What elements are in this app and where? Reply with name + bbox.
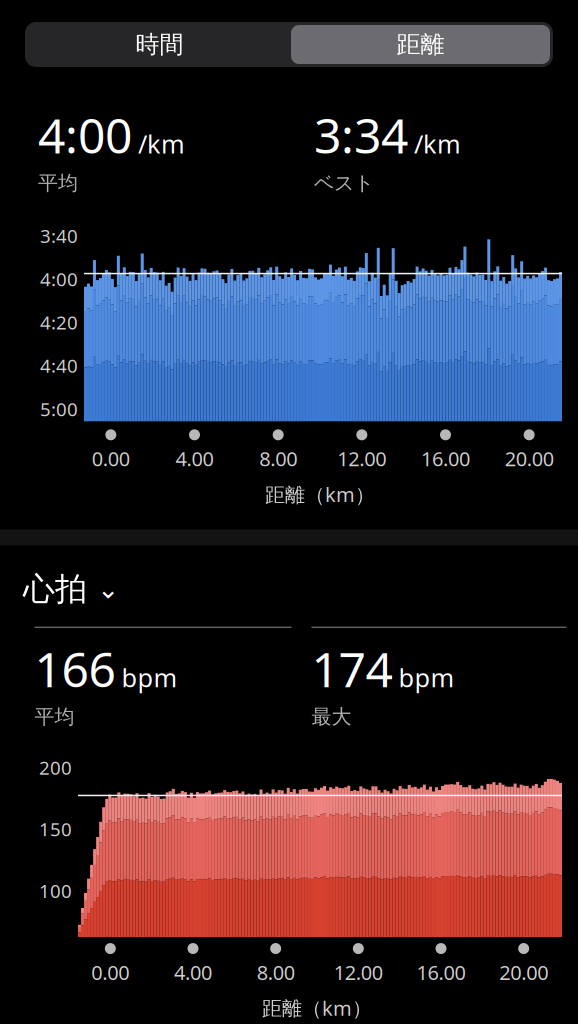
staticText: bpm (121, 661, 177, 694)
staticText: 5:00 (40, 396, 78, 421)
staticText: 4.00 (175, 445, 213, 472)
staticText: 4.00 (174, 959, 212, 986)
staticText: 20.00 (505, 445, 554, 472)
staticText: 平均 (34, 704, 74, 729)
staticText: 166 (34, 637, 115, 700)
staticText: 12.00 (334, 959, 383, 986)
button[interactable]: 距離 (291, 25, 550, 64)
staticText: 距離 (396, 30, 444, 59)
staticText: 心拍 (23, 569, 87, 609)
staticText: 距離（km） (262, 995, 372, 1021)
staticText: 100 (39, 878, 72, 903)
staticText: /km (138, 127, 185, 160)
staticText: 4:20 (40, 310, 78, 335)
staticText: 8.00 (259, 445, 297, 472)
staticText: 3:34 (314, 103, 408, 167)
staticText: /km (414, 127, 461, 160)
button[interactable]: 時間 (28, 25, 291, 64)
staticText: 平均 (38, 171, 78, 195)
staticText: 8.00 (257, 959, 295, 986)
staticText: ⌄ (97, 574, 119, 604)
staticText: 16.00 (416, 959, 465, 986)
staticText: 時間 (135, 30, 183, 59)
staticText: 12.00 (337, 445, 386, 472)
staticText: 4:00 (40, 267, 78, 291)
staticText: 4:00 (38, 103, 132, 167)
staticText: 3:40 (40, 223, 78, 248)
staticText: 4:40 (40, 353, 78, 378)
button[interactable]: 心拍 (0, 545, 578, 613)
staticText: ベスト (314, 171, 374, 195)
staticText: 0.00 (92, 445, 130, 472)
staticText: 最大 (311, 704, 351, 729)
staticText: 200 (39, 755, 72, 780)
staticText: 16.00 (421, 445, 470, 472)
staticText: 150 (39, 817, 72, 841)
staticText: 0.00 (91, 959, 129, 986)
staticText: 距離（km） (265, 481, 375, 507)
staticText: 20.00 (499, 959, 548, 986)
staticText: bpm (398, 661, 454, 694)
staticText: 174 (311, 637, 392, 700)
